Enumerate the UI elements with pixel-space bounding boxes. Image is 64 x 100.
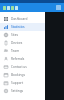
button[interactable]: Team: [0, 47, 45, 55]
staticText: Bookings: [11, 73, 25, 77]
button[interactable]: Support: [0, 79, 45, 87]
button[interactable]: Dashboard: [0, 15, 45, 23]
button[interactable]: Menu: [56, 5, 61, 10]
staticText: Statistics: [11, 25, 25, 29]
staticText: Support: [11, 81, 24, 85]
staticText: Contact us: [11, 65, 27, 69]
staticText: Dashboard: [11, 17, 28, 21]
button[interactable]: Devices: [0, 39, 45, 47]
staticText: Settings: [11, 89, 24, 93]
button[interactable]: Bookings: [0, 71, 45, 79]
button[interactable]: Sites: [0, 31, 45, 39]
staticText: Referrals: [11, 57, 25, 61]
button[interactable]: Statistics: [0, 23, 45, 31]
staticText: Team: [11, 49, 20, 53]
staticText: Devices: [11, 41, 23, 45]
button[interactable]: Referrals: [0, 55, 45, 63]
staticText: Sites: [11, 33, 19, 37]
button[interactable]: Settings: [0, 87, 45, 95]
button[interactable]: Contact us: [0, 63, 45, 71]
